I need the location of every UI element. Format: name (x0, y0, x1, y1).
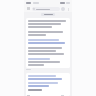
button[interactable]: Menu (26, 6, 31, 11)
button[interactable] (32, 7, 60, 11)
button[interactable]: Account (61, 7, 65, 11)
button[interactable] (26, 18, 70, 68)
button[interactable] (26, 73, 70, 96)
button[interactable]: More options (66, 7, 70, 11)
